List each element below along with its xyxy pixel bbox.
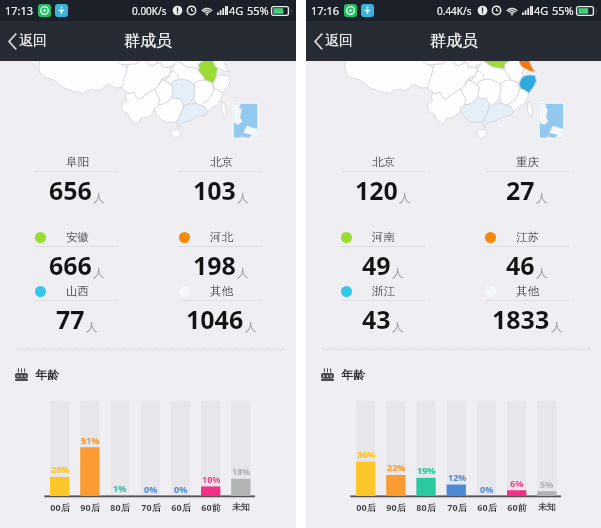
staticText: 6% xyxy=(510,477,524,489)
staticText: 666 xyxy=(49,248,92,282)
staticText: 103 xyxy=(193,173,236,207)
staticText: 人 xyxy=(93,191,105,205)
staticText: 12% xyxy=(448,471,467,483)
staticText: 未知 xyxy=(538,501,556,512)
staticText: 人 xyxy=(536,266,548,280)
staticText: 60后 xyxy=(171,501,191,513)
staticText: 人 xyxy=(245,320,257,334)
staticText: 22% xyxy=(387,461,406,473)
staticText: 年龄 xyxy=(341,367,365,382)
staticText: 20% xyxy=(51,463,70,475)
staticText: 北京 xyxy=(372,155,395,169)
staticText: 51% xyxy=(81,434,100,446)
staticText: 重庆 xyxy=(516,155,539,169)
staticText: 人 xyxy=(93,266,105,280)
staticText: 江苏 xyxy=(516,230,539,244)
staticText: 人 xyxy=(392,266,404,280)
staticText: 人 xyxy=(551,320,563,334)
staticText: 198 xyxy=(193,248,236,282)
staticText: 河南 xyxy=(372,230,395,244)
staticText: 60后 xyxy=(477,501,497,513)
staticText: 人 xyxy=(392,320,404,334)
staticText: 43 xyxy=(362,302,391,336)
staticText: 返回 xyxy=(19,32,47,50)
staticText: 人 xyxy=(399,191,411,205)
staticText: 其他 xyxy=(516,284,539,298)
staticText: 未知 xyxy=(232,501,250,512)
staticText: 80后 xyxy=(110,501,130,513)
button[interactable]: 其他 xyxy=(485,281,569,330)
staticText: 年龄 xyxy=(35,367,59,382)
staticText: 70后 xyxy=(141,501,161,513)
staticText: 17:16 xyxy=(311,3,340,18)
button[interactable]: 重庆 xyxy=(485,152,569,201)
staticText: 0% xyxy=(144,483,158,495)
staticText: 1833 xyxy=(492,302,550,336)
staticText: 00后 xyxy=(356,501,376,513)
staticText: 4G xyxy=(534,3,549,18)
staticText: 55% xyxy=(552,3,574,18)
staticText: 18% xyxy=(232,465,251,477)
button[interactable]: 北京 xyxy=(179,152,263,201)
button[interactable]: 安徽 xyxy=(35,227,119,276)
staticText: 0.00K/s xyxy=(132,4,167,18)
staticText: 人 xyxy=(536,191,548,205)
button[interactable]: 河南 xyxy=(341,227,425,276)
staticText: 19% xyxy=(417,464,436,476)
staticText: 27 xyxy=(506,173,535,207)
button[interactable]: 山西 xyxy=(35,281,119,330)
staticText: 60前 xyxy=(201,501,221,513)
staticText: 0.44K/s xyxy=(437,4,472,18)
staticText: 人 xyxy=(237,191,249,205)
staticText: 80后 xyxy=(416,501,436,513)
staticText: 返回 xyxy=(325,32,353,50)
staticText: 46 xyxy=(506,248,535,282)
staticText: 山西 xyxy=(66,284,89,298)
staticText: 群成员 xyxy=(124,31,172,51)
staticText: 90后 xyxy=(386,501,406,513)
staticText: 1% xyxy=(113,482,127,494)
staticText: 10% xyxy=(202,473,221,485)
staticText: 浙江 xyxy=(372,284,395,298)
staticText: 河北 xyxy=(210,230,233,244)
staticText: 4G xyxy=(229,3,244,18)
staticText: 安徽 xyxy=(66,230,89,244)
button[interactable]: 其他 xyxy=(179,281,263,330)
staticText: 90后 xyxy=(80,501,100,513)
staticText: 49 xyxy=(362,248,391,282)
button[interactable]: 北京 xyxy=(341,152,425,201)
staticText: 5% xyxy=(540,478,554,490)
staticText: 36% xyxy=(357,448,376,460)
staticText: 656 xyxy=(49,173,92,207)
staticText: 70后 xyxy=(447,501,467,513)
button[interactable]: 阜阳 xyxy=(35,152,119,201)
button[interactable]: 返回 xyxy=(306,21,363,61)
staticText: 群成员 xyxy=(430,31,478,51)
staticText: 17:13 xyxy=(5,3,34,18)
staticText: 北京 xyxy=(210,155,233,169)
button[interactable]: 江苏 xyxy=(485,227,569,276)
staticText: 55% xyxy=(247,3,269,18)
staticText: 人 xyxy=(237,266,249,280)
staticText: 阜阳 xyxy=(66,155,89,169)
button[interactable]: 河北 xyxy=(179,227,263,276)
staticText: 120 xyxy=(355,173,398,207)
staticText: 其他 xyxy=(210,284,233,298)
staticText: 0% xyxy=(174,483,188,495)
button[interactable]: 浙江 xyxy=(341,281,425,330)
staticText: 0% xyxy=(480,483,494,495)
staticText: 77 xyxy=(56,302,85,336)
staticText: 60前 xyxy=(507,501,527,513)
staticText: 00后 xyxy=(50,501,70,513)
button[interactable]: 返回 xyxy=(0,21,57,61)
staticText: 1046 xyxy=(186,302,244,336)
staticText: 人 xyxy=(86,320,98,334)
